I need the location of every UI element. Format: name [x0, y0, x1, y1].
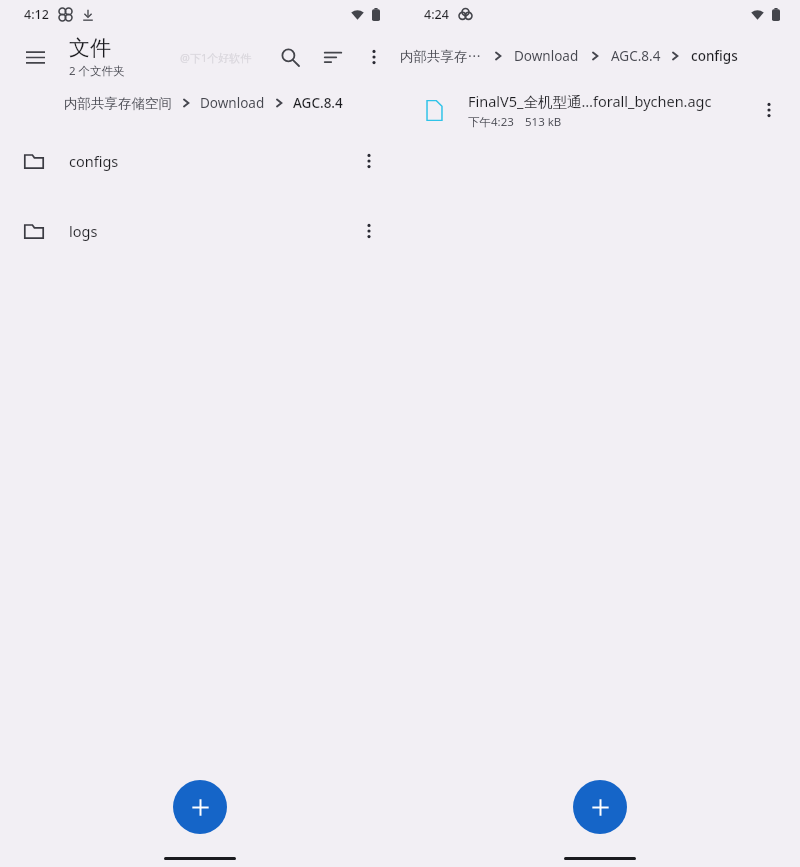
button[interactable]: Download: [514, 47, 579, 65]
button[interactable]: Create new: [573, 780, 627, 834]
button[interactable]: AGC.8.4: [611, 47, 661, 65]
staticText: 2 个文件夹: [69, 63, 125, 79]
staticText: @下1个好软件: [180, 50, 252, 65]
button[interactable]: More options: [354, 37, 394, 77]
button[interactable]: AGC.8.4: [291, 92, 345, 114]
staticText: FinalV5_全机型通…forall_bychen.agc: [468, 91, 712, 111]
button[interactable]: logs: [0, 196, 400, 266]
staticText: 下午4:23: [468, 114, 514, 130]
staticText: 4:12: [24, 6, 49, 23]
button[interactable]: Sort: [312, 36, 354, 78]
button[interactable]: More options for configs: [349, 141, 389, 181]
staticText: 513 kB: [525, 114, 562, 130]
staticText: 内部共享存储空间: [400, 48, 484, 65]
button[interactable]: Search: [268, 35, 312, 79]
button[interactable]: Create new: [173, 780, 227, 834]
button[interactable]: Open navigation drawer: [14, 36, 56, 78]
button[interactable]: configs: [0, 126, 400, 196]
staticText: AGC.8.4: [293, 94, 343, 112]
staticText: Download: [514, 47, 579, 65]
staticText: AGC.8.4: [611, 47, 661, 65]
button[interactable]: Download: [198, 92, 267, 114]
button[interactable]: configs: [691, 47, 738, 65]
button[interactable]: 内部共享存储空间: [400, 48, 484, 65]
staticText: configs: [69, 151, 119, 171]
staticText: configs: [691, 47, 738, 65]
staticText: Download: [200, 94, 265, 112]
button[interactable]: FinalV5_全机型通…forall_bychen.agc: [400, 80, 800, 140]
button[interactable]: More options for file: [749, 90, 789, 130]
staticText: 内部共享存储空间: [64, 95, 172, 112]
staticText: 文件: [69, 35, 111, 61]
staticText: logs: [69, 221, 98, 241]
staticText: 4:24: [424, 6, 449, 23]
button[interactable]: 内部共享存储空间: [62, 93, 174, 114]
button[interactable]: More options for logs: [349, 211, 389, 251]
